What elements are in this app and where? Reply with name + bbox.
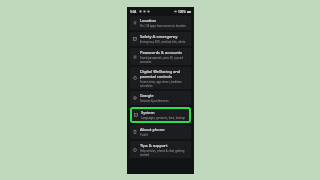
staticText: Location: [140, 18, 157, 23]
staticText: Languages, gestures, time, backup: [141, 116, 185, 120]
staticText: System: [141, 110, 155, 115]
button[interactable]: Location: [130, 16, 191, 30]
button[interactable]: Digital Wellbeing and parental controls: [130, 67, 191, 89]
staticText: Help articles, phone & chat, getting sta…: [140, 149, 189, 156]
staticText: Pixel 6: [140, 133, 149, 137]
button[interactable]: Safety & emergency: [130, 32, 191, 46]
button[interactable]: Tips & support: [130, 141, 191, 158]
staticText: 9:04: [130, 10, 137, 14]
button[interactable]: System: [131, 108, 190, 122]
button[interactable]: Passwords & accounts: [130, 48, 191, 65]
staticText: Screen time, app timers, bedtime schedul…: [140, 80, 189, 87]
staticText: Safety & emergency: [140, 34, 178, 39]
staticText: Saved passwords, auto-fill, synced accou…: [140, 56, 189, 63]
staticText: Tips & support: [140, 143, 168, 148]
staticText: Emergency SOS, medical info, alerts: [140, 40, 186, 44]
staticText: On / 24 apps have access to location: [140, 24, 186, 28]
staticText: About phone: [140, 127, 165, 132]
staticText: Digital Wellbeing and parental controls: [140, 69, 189, 79]
staticText: Passwords & accounts: [140, 50, 182, 55]
button[interactable]: About phone: [130, 125, 191, 139]
button[interactable]: Google: [130, 91, 191, 105]
staticText: 100%: [178, 10, 186, 14]
staticText: Services & preferences: [140, 99, 169, 103]
staticText: Google: [140, 93, 154, 98]
